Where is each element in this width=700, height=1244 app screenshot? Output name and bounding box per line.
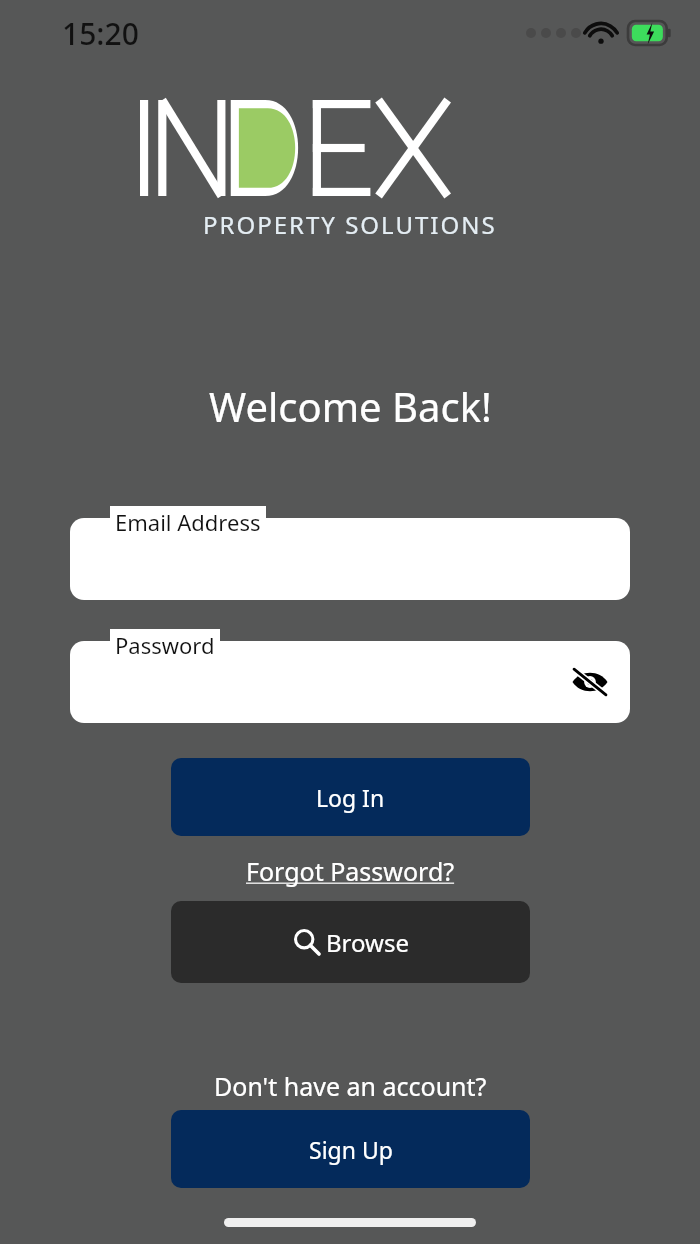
staticText: Forgot Password? — [246, 854, 455, 888]
staticText: 15:20 — [62, 13, 139, 54]
button[interactable] — [70, 518, 630, 600]
button[interactable]: Log In — [171, 758, 530, 836]
staticText: Email Address — [115, 507, 261, 537]
staticText: Sign Up — [309, 1134, 393, 1165]
staticText: Welcome Back! — [209, 379, 492, 433]
staticText: Password — [115, 630, 215, 660]
staticText: Browse — [326, 926, 409, 959]
button[interactable]: Sign Up — [171, 1110, 530, 1188]
button[interactable]: Forgot Password? — [236, 851, 465, 891]
button[interactable]: Browse — [171, 901, 530, 983]
button[interactable]: Show password — [568, 660, 612, 704]
staticText: Don't have an account? — [214, 1069, 487, 1103]
staticText: PROPERTY SOLUTIONS — [203, 208, 497, 241]
staticText: Log In — [316, 782, 385, 813]
button[interactable]: Show password — [70, 641, 630, 723]
